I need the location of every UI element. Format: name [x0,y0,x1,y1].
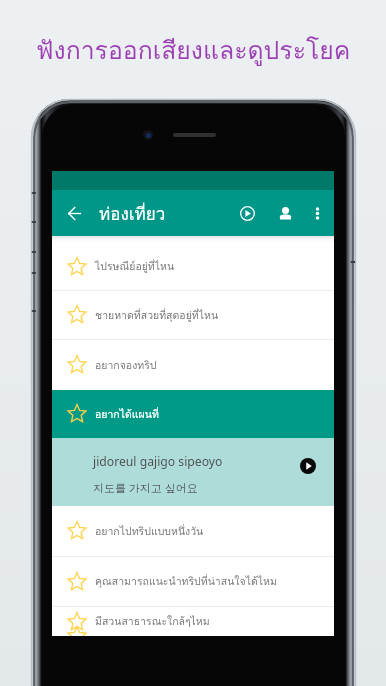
button[interactable]: Account [272,200,298,226]
staticText: ไปรษณีย์อยู่ที่ไหน [95,258,175,275]
staticText: ฟังการออกเสียงและดูประโยค [36,31,351,70]
staticText: ท่องเที่ยว [99,200,166,227]
button[interactable]: Play audio [296,454,320,478]
staticText: 지도를 가지고 싶어요 [93,480,198,495]
button[interactable]: อยากจองทริป [52,340,334,390]
button[interactable]: อยากไปทริปแบบหนึ่งวัน [52,506,334,556]
staticText: อยากไปทริปแบบหนึ่งวัน [95,523,204,540]
staticText: มีสวนสาธารณะใกล้ๆไหม [95,613,210,630]
button[interactable]: มีสวนสาธารณะใกล้ๆไหม [52,607,334,636]
staticText: ชายหาดที่สวยที่สุดอยู่ที่ไหน [95,307,219,324]
button[interactable]: อยากได้แผนที่ [52,390,334,438]
button[interactable]: Play [234,200,260,226]
staticText: jidoreul gajigo sipeoyo [93,453,223,470]
staticText: อยากได้แผนที่ [95,406,159,423]
staticText: อยากจองทริป [95,357,157,374]
button[interactable]: More options [304,200,330,226]
button[interactable]: Back [61,200,87,226]
staticText: คุณสามารถแนะนำทริปที่น่าสนใจได้ไหม [95,573,277,590]
button[interactable]: ชายหาดที่สวยที่สุดอยู่ที่ไหน [52,291,334,339]
button[interactable]: ไปรษณีย์อยู่ที่ไหน [52,243,334,290]
button[interactable]: คุณสามารถแนะนำทริปที่น่าสนใจได้ไหม [52,557,334,606]
